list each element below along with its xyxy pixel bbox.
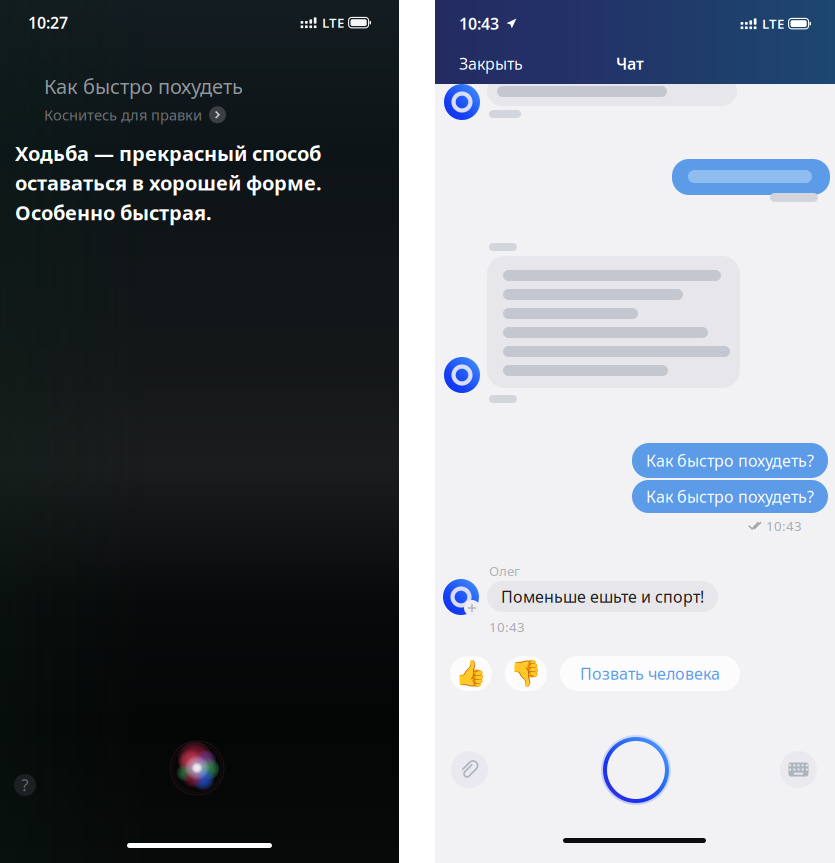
- staticText: Позвать человека: [580, 663, 720, 684]
- staticText: Олег: [489, 562, 520, 580]
- button[interactable]: Позвать человека: [560, 656, 740, 691]
- staticText: 👍: [455, 659, 487, 688]
- staticText: Как быстро похудеть?: [646, 486, 814, 507]
- staticText: оставаться в хорошей форме.: [15, 170, 322, 196]
- staticText: Закрыть: [459, 53, 523, 74]
- staticText: 10:43: [459, 13, 499, 34]
- staticText: Ходьба — прекрасный способ: [15, 140, 321, 167]
- staticText: ?: [21, 774, 28, 796]
- button[interactable]: Не нравится: [505, 656, 547, 691]
- staticText: LTE: [762, 15, 784, 32]
- staticText: 👎: [510, 659, 542, 688]
- staticText: Особенно быстрая.: [15, 199, 212, 226]
- staticText: Как быстро похудеть?: [646, 450, 814, 471]
- staticText: LTE: [322, 14, 344, 31]
- button[interactable]: Закрыть: [455, 47, 527, 80]
- button[interactable]: Голосовое сообщение: [601, 735, 671, 805]
- button[interactable]: Прикрепить файл: [451, 751, 488, 788]
- staticText: Поменьше ешьте и спорт!: [501, 586, 704, 607]
- button[interactable]: Клавиатура: [780, 751, 817, 788]
- staticText: Коснитесь для правки: [44, 105, 202, 124]
- staticText: 10:43: [766, 517, 802, 535]
- button[interactable]: Нравится: [450, 656, 492, 691]
- staticText: 10:27: [28, 12, 68, 33]
- staticText: Чат: [616, 53, 644, 74]
- staticText: 10:43: [489, 618, 525, 636]
- staticText: Как быстро похудеть: [44, 73, 243, 100]
